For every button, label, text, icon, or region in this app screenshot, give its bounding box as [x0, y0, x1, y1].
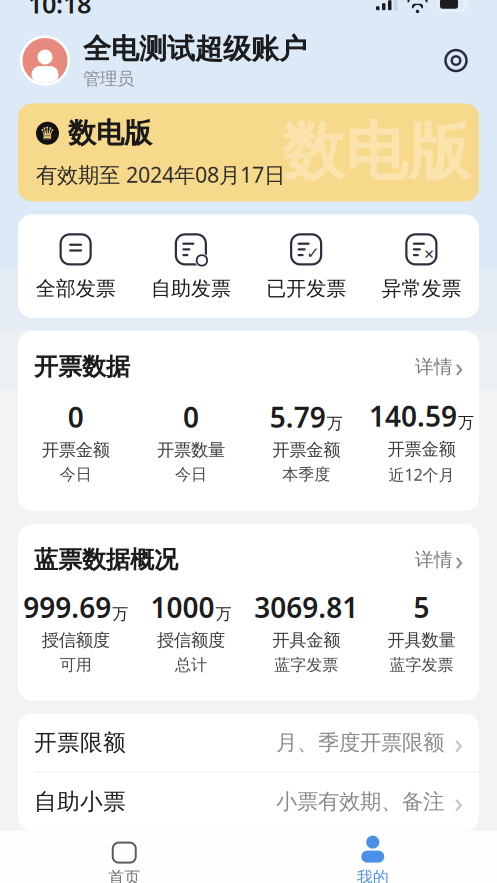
staticText: 全电测试超级账户 — [83, 32, 307, 66]
button[interactable]: 详情 — [403, 347, 463, 386]
staticText: ✕ — [423, 247, 434, 262]
staticText: 数电版 — [68, 116, 152, 150]
button[interactable]: 数电版 — [18, 103, 479, 201]
staticText: 蓝票数据概况 — [34, 545, 178, 575]
staticText: 自助发票 — [151, 276, 231, 301]
staticText: 开票数据 — [34, 352, 130, 381]
button[interactable]: ✕ — [364, 231, 479, 301]
staticText: 开具数量 — [387, 630, 455, 651]
staticText: 详情 — [415, 548, 453, 571]
staticText: › — [454, 723, 463, 762]
staticText: 万 — [112, 604, 128, 624]
staticText: 蓝字发票 — [274, 655, 338, 675]
staticText: 授信额度 — [42, 630, 110, 651]
staticText: 已开发票 — [266, 276, 346, 301]
button[interactable]: 详情 — [403, 540, 463, 579]
button[interactable]: 我的 — [248, 839, 497, 883]
staticText: › — [454, 782, 463, 821]
button[interactable]: ✓ — [248, 231, 364, 301]
staticText: › — [455, 349, 463, 384]
staticText: 999.69 — [23, 588, 111, 626]
staticText: 异常发票 — [381, 276, 461, 301]
staticText: 小票有效期、备注 — [276, 788, 444, 815]
staticText: 3069.81 — [254, 588, 358, 626]
staticText: 10:18 — [28, 0, 91, 20]
staticText: › — [455, 542, 463, 577]
staticText: 蓝字发票 — [389, 655, 453, 675]
staticText: 今日 — [60, 465, 92, 484]
staticText: 月、季度开票限额 — [276, 729, 444, 756]
staticText: 近12个月 — [388, 464, 454, 485]
staticText: ✓ — [306, 244, 319, 262]
staticText: 数电版 — [282, 114, 471, 191]
staticText: 全部发票 — [36, 276, 116, 301]
button[interactable]: 全部发票 — [18, 231, 133, 301]
staticText: 万 — [458, 413, 474, 433]
staticText: 管理员 — [83, 68, 134, 89]
button[interactable]: 自助发票 — [133, 231, 248, 301]
staticText: 详情 — [415, 355, 453, 378]
staticText: 1000 — [150, 588, 214, 626]
staticText: 开票金额 — [42, 439, 110, 461]
staticText: 可用 — [60, 655, 92, 675]
staticText: 开具金额 — [272, 630, 340, 651]
staticText: 5 — [413, 588, 429, 626]
staticText: 有效期至 2024年08月17日 — [36, 160, 285, 189]
button[interactable]: 首页 — [0, 839, 248, 883]
staticText: 自助小票 — [34, 788, 126, 815]
staticText: 授信额度 — [157, 630, 225, 651]
staticText: 我的 — [357, 868, 389, 883]
staticText: ♛ — [39, 123, 55, 143]
staticText: 0 — [68, 398, 84, 435]
staticText: 万 — [215, 604, 231, 624]
staticText: 开票金额 — [387, 439, 455, 460]
staticText: 首页 — [108, 868, 140, 883]
staticText: 开票限额 — [34, 729, 126, 756]
staticText: 开票金额 — [272, 439, 340, 461]
button[interactable]: Settings — [435, 40, 477, 82]
staticText: 开票数量 — [157, 439, 225, 461]
staticText: 总计 — [175, 655, 207, 675]
button[interactable]: 自助小票 — [18, 773, 479, 831]
staticText: 本季度 — [282, 465, 330, 484]
staticText: 今日 — [175, 465, 207, 484]
staticText: 5.79 — [270, 398, 326, 435]
staticText: 140.59 — [369, 397, 457, 435]
staticText: 0 — [183, 398, 199, 435]
button[interactable]: 开票限额 — [18, 714, 479, 772]
staticText: 万 — [327, 414, 343, 433]
